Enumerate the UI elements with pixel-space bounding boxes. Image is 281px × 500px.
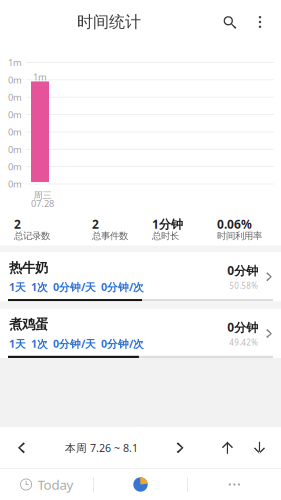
staticText: Today: [38, 476, 74, 493]
staticText: 50.58%: [229, 280, 258, 291]
button[interactable]: Previous period: [11, 435, 32, 460]
staticText: 总时长: [152, 230, 179, 242]
staticText: 0m: [8, 178, 22, 190]
button[interactable]: Next period: [171, 435, 192, 460]
staticText: 煮鸡蛋: [9, 316, 48, 333]
staticText: 0分钟/天: [53, 337, 96, 351]
button[interactable]: Scroll to bottom: [249, 437, 270, 459]
staticText: 1m: [8, 56, 22, 69]
staticText: 1天: [9, 337, 26, 351]
staticText: 0分钟/天: [53, 280, 96, 294]
staticText: 时间利用率: [217, 230, 262, 242]
staticText: 2: [14, 216, 21, 232]
staticText: 0m: [8, 108, 22, 121]
button[interactable]: More options: [249, 10, 271, 33]
staticText: 总记录数: [14, 230, 50, 242]
button[interactable]: Search: [218, 10, 241, 33]
button[interactable]: 煮鸡蛋: [0, 309, 281, 358]
staticText: 0m: [8, 160, 22, 173]
staticText: 07.28: [31, 197, 54, 210]
staticText: 0.06%: [217, 216, 252, 232]
staticText: 本周 7.26 ~ 8.1: [65, 441, 138, 455]
staticText: 1m: [33, 71, 47, 83]
staticText: 1次: [31, 280, 48, 294]
staticText: 0分钟: [227, 319, 258, 335]
button[interactable]: Today: [0, 469, 93, 499]
staticText: 1天: [9, 280, 26, 294]
staticText: 1分钟: [152, 216, 183, 232]
staticText: 0m: [8, 74, 22, 86]
staticText: 0分钟: [227, 262, 258, 278]
staticText: 1次: [31, 337, 48, 351]
staticText: 时间统计: [77, 12, 141, 32]
staticText: 0分钟/次: [101, 280, 144, 294]
staticText: 总事件数: [92, 230, 128, 242]
staticText: 热牛奶: [9, 259, 48, 276]
staticText: 49.42%: [229, 337, 258, 348]
staticText: 0m: [8, 126, 22, 138]
staticText: 0m: [8, 91, 22, 103]
staticText: 0分钟/次: [101, 337, 144, 351]
button[interactable]: Statistics: [94, 469, 187, 499]
button[interactable]: 热牛奶: [0, 252, 281, 301]
staticText: 0m: [8, 143, 22, 155]
button[interactable]: More: [188, 469, 281, 499]
button[interactable]: Scroll to top: [217, 437, 238, 459]
staticText: 周三: [33, 190, 51, 201]
staticText: 2: [92, 216, 99, 232]
